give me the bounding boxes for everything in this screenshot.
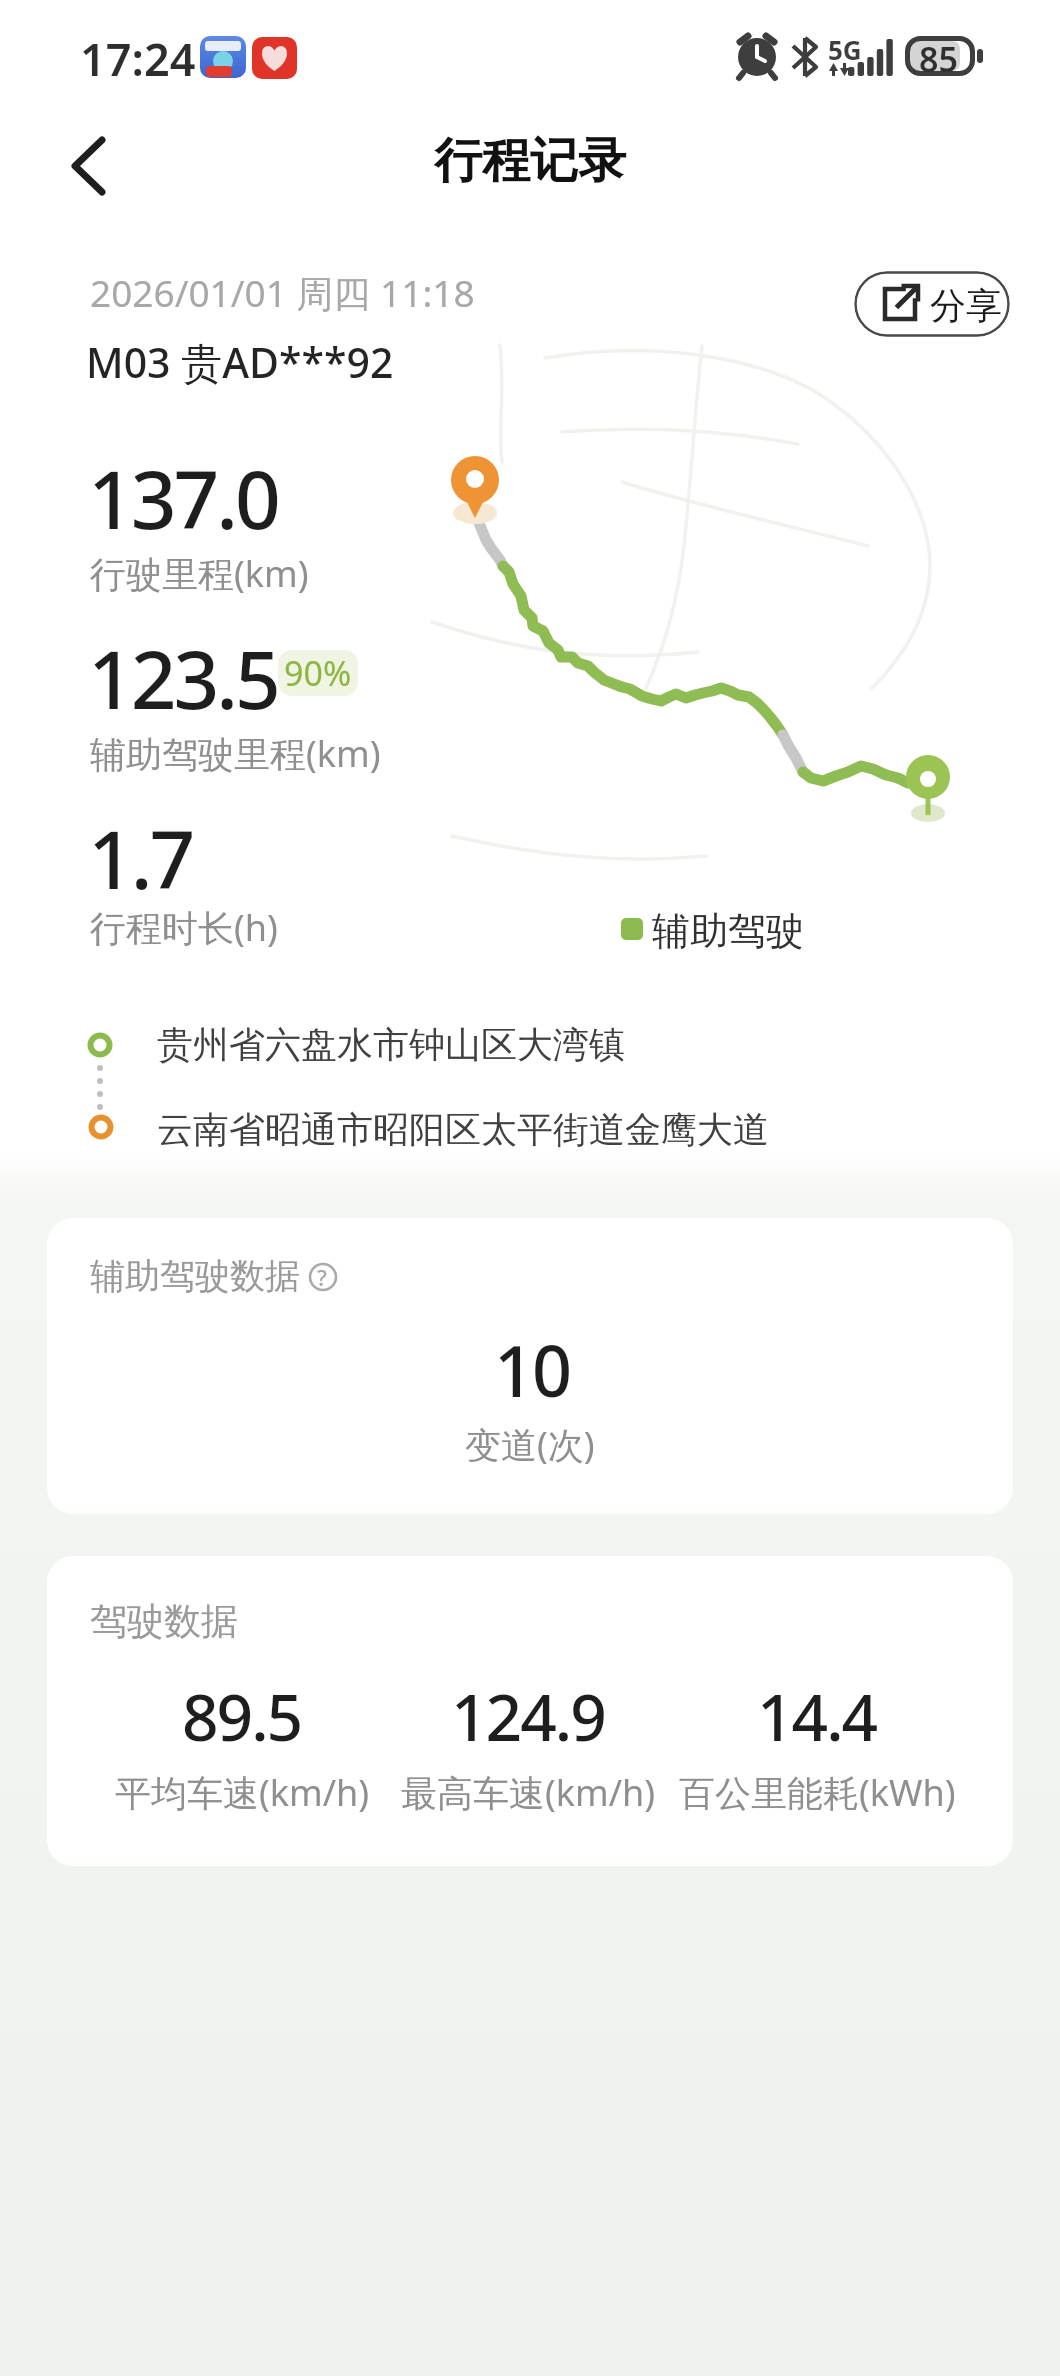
staticText: 辅助驾驶 [652, 907, 804, 955]
button[interactable]: 驾驶数据 [47, 1556, 1013, 1866]
staticText: M03 贵AD***92 [86, 334, 394, 390]
button[interactable] [309, 1263, 339, 1293]
staticText: 贵州省六盘水市钟山区大湾镇 [157, 1022, 625, 1067]
staticText: 行程时长(h) [90, 903, 278, 952]
staticText: 14.4 [757, 1673, 877, 1760]
staticText: 90% [284, 650, 352, 696]
button[interactable] [60, 130, 120, 200]
staticText: 最高车速(km/h) [401, 1768, 656, 1817]
staticText: 云南省昭通市昭阳区太平街道金鹰大道 [157, 1107, 769, 1152]
staticText: 辅助驾驶里程(km) [90, 729, 381, 778]
staticText: 行程记录 [434, 131, 626, 191]
staticText: 驾驶数据 [90, 1598, 238, 1645]
staticText: 1.7 [88, 803, 193, 912]
staticText: 2026/01/01 周四 11:18 [90, 267, 475, 318]
staticText: 137.0 [88, 443, 278, 552]
button[interactable]: 分享 [854, 271, 1010, 337]
staticText: 123.5 [88, 623, 278, 732]
staticText: 辅助驾驶数据 [90, 1254, 300, 1298]
staticText: 行驶里程(km) [90, 549, 309, 598]
staticText: 分享 [930, 283, 1002, 328]
staticText: 17:24 [80, 28, 196, 89]
staticText: 变道(次) [465, 1420, 595, 1469]
staticText: 85 [919, 36, 958, 82]
staticText: 124.9 [451, 1673, 605, 1760]
staticText: 89.5 [182, 1673, 302, 1760]
staticText: 5G [828, 32, 862, 67]
button[interactable]: 辅助驾驶数据 [47, 1218, 1013, 1514]
staticText: 10 [494, 1322, 571, 1417]
staticText: 平均车速(km/h) [115, 1768, 370, 1817]
staticText: 百公里能耗(kWh) [679, 1768, 956, 1817]
staticText: ? [317, 1262, 327, 1292]
